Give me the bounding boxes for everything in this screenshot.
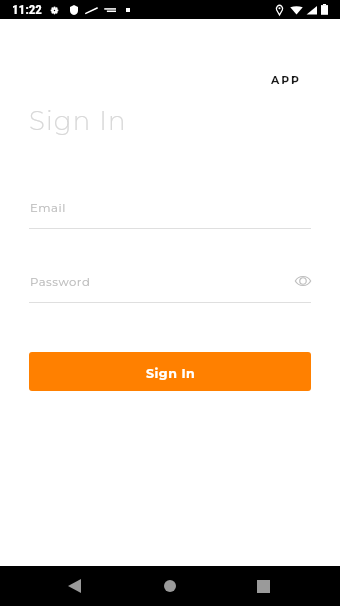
button[interactable]: APP [271, 74, 340, 87]
button[interactable]: Show password [293, 271, 313, 291]
staticText: Email [30, 201, 66, 215]
staticText: Password [30, 275, 91, 289]
staticText: 11:22 [12, 2, 42, 17]
staticText: APP [271, 74, 301, 87]
staticText: Sign In [146, 366, 196, 381]
button[interactable]: Recents [246, 569, 280, 603]
button[interactable]: Sign In [29, 352, 311, 391]
button[interactable]: Home [153, 569, 187, 603]
button[interactable]: Back [57, 569, 91, 603]
staticText: Sign In [29, 105, 127, 137]
